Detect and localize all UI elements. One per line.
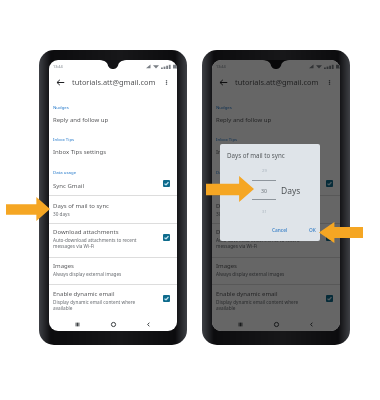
staticText: Always display external images [216, 271, 285, 277]
staticText: Images [216, 262, 237, 270]
staticText: Auto-download attachments to recent mess… [53, 237, 137, 249]
staticText: Nudges [216, 104, 232, 110]
staticText: Reply and follow up [53, 116, 109, 124]
staticText: Inbox Tips settings [53, 148, 107, 156]
button[interactable]: Home [107, 318, 120, 331]
button[interactable] [212, 196, 340, 224]
staticText: Data usage [53, 169, 77, 175]
staticText: Days of mail to sync [216, 202, 273, 210]
button[interactable]: OK [307, 225, 318, 236]
button[interactable] [49, 145, 177, 161]
button[interactable] [49, 285, 177, 317]
button[interactable] [49, 178, 177, 196]
staticText: Days of mail to sync [53, 202, 110, 210]
staticText: Sync Gmail [216, 182, 247, 190]
button[interactable] [212, 285, 340, 317]
button[interactable] [212, 224, 340, 258]
staticText: 13:44 [53, 64, 63, 69]
staticText: 30 days [216, 211, 233, 217]
staticText: Enable dynamic email [216, 290, 278, 298]
button[interactable] [49, 224, 177, 258]
staticText: Data usage [216, 169, 240, 175]
staticText: Cancel [272, 227, 288, 234]
staticText: Always display external images [53, 271, 122, 277]
button[interactable]: Home [270, 318, 283, 331]
staticText: 30 days [53, 211, 70, 217]
staticText: Inbox Tips [216, 136, 238, 142]
button[interactable]: Back [142, 318, 155, 331]
staticText: Auto-download attachments to recent mess… [216, 237, 300, 249]
staticText: Inbox Tips settings [216, 148, 270, 156]
button[interactable] [49, 113, 177, 128]
staticText: Inbox Tips [53, 136, 75, 142]
staticText: Enable dynamic email [53, 290, 115, 298]
button[interactable] [212, 145, 340, 161]
staticText: OK [309, 227, 316, 234]
button[interactable]: Back [55, 77, 66, 88]
staticText: Download attachments [216, 228, 282, 236]
staticText: Nudges [53, 104, 69, 110]
button[interactable]: Recents [71, 318, 84, 331]
button[interactable] [49, 196, 177, 224]
staticText: Images [53, 262, 74, 270]
staticText: Download attachments [53, 228, 119, 236]
staticText: Days [281, 185, 301, 197]
staticText: 30 [261, 187, 267, 194]
staticText: tutorials.att@gmail.com [72, 77, 156, 87]
button[interactable]: More options [162, 78, 171, 87]
staticText: tutorials.att@gmail.com [235, 77, 319, 87]
button[interactable] [212, 258, 340, 285]
button[interactable] [212, 113, 340, 128]
button[interactable]: Recents [234, 318, 247, 331]
staticText: 31 [262, 209, 267, 215]
staticText: 29 [262, 168, 267, 174]
staticText: Days of mail to sync [227, 151, 285, 159]
button[interactable]: Back [218, 77, 229, 88]
staticText: Display dynamic email content where avai… [53, 299, 136, 311]
button[interactable]: Cancel [270, 225, 290, 236]
button[interactable]: Back [305, 318, 318, 331]
button[interactable]: More options [325, 78, 334, 87]
button[interactable] [49, 258, 177, 285]
staticText: Sync Gmail [53, 182, 84, 190]
button[interactable] [212, 178, 340, 196]
staticText: Display dynamic email content where avai… [216, 299, 299, 311]
staticText: 13:44 [216, 64, 226, 69]
staticText: Reply and follow up [216, 116, 272, 124]
